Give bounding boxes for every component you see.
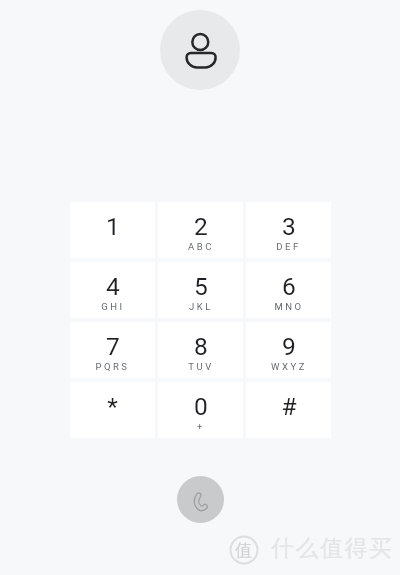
button[interactable]: 1 — [70, 202, 155, 258]
staticText: WXYZ — [271, 361, 307, 372]
button[interactable]: 3 — [246, 202, 331, 258]
staticText: DEF — [276, 241, 301, 252]
button[interactable]: 2 — [158, 202, 243, 258]
staticText: 6 — [282, 272, 296, 301]
button[interactable]: * — [70, 382, 155, 438]
button[interactable] — [160, 10, 240, 90]
staticText: 2 — [194, 212, 208, 241]
button[interactable]: 5 — [158, 262, 243, 318]
button[interactable]: # — [246, 382, 331, 438]
staticText: 0 — [194, 392, 208, 421]
staticText: 8 — [194, 332, 208, 361]
button[interactable]: 6 — [246, 262, 331, 318]
button[interactable] — [177, 476, 224, 523]
staticText: 4 — [106, 272, 120, 301]
staticText: 9 — [282, 332, 296, 361]
staticText: TUV — [188, 361, 214, 372]
staticText: 1 — [106, 212, 120, 241]
staticText: JKL — [189, 301, 213, 312]
staticText: 5 — [194, 272, 208, 301]
button[interactable]: 4 — [70, 262, 155, 318]
button[interactable]: 7 — [70, 322, 155, 378]
staticText: 3 — [282, 212, 296, 241]
staticText: GHI — [101, 301, 125, 312]
staticText: # — [281, 392, 297, 421]
button[interactable]: 9 — [246, 322, 331, 378]
button[interactable]: 8 — [158, 322, 243, 378]
staticText: 什么值得买 — [271, 534, 394, 563]
staticText: + — [197, 421, 205, 432]
staticText: MNO — [274, 301, 304, 312]
staticText: 值 — [235, 540, 252, 561]
staticText: PQRS — [95, 361, 130, 372]
button[interactable]: 0 — [158, 382, 243, 438]
staticText: * — [107, 392, 118, 421]
staticText: ABC — [188, 241, 214, 252]
staticText: 7 — [106, 332, 120, 361]
